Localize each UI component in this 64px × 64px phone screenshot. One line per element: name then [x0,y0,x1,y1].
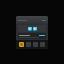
button[interactable] [16,16,48,24]
button[interactable]: App two [26,42,31,47]
button[interactable]: Feature chip [28,27,32,31]
button[interactable]: App four [40,42,45,47]
button[interactable] [18,33,46,39]
button[interactable]: Feature chip [18,25,46,32]
button[interactable]: Feature chip [33,27,37,31]
button[interactable]: Highlighted app [19,42,24,47]
button[interactable]: App three [33,42,38,47]
